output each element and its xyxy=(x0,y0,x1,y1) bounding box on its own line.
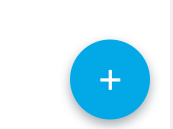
button[interactable]: Add xyxy=(70,39,150,119)
